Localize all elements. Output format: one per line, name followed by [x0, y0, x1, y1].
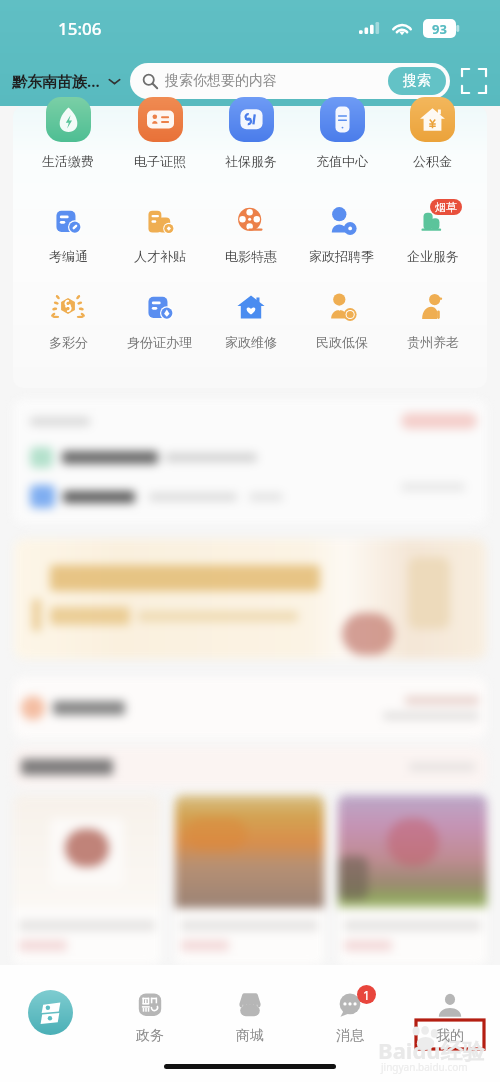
- button[interactable]: 烟草: [387, 190, 478, 276]
- button[interactable]: 我的: [400, 965, 500, 1055]
- staticText: 政务: [136, 1027, 164, 1045]
- staticText: 我的: [436, 1027, 464, 1045]
- staticText: 家政招聘季: [309, 248, 374, 264]
- button[interactable]: 多彩分: [22, 276, 114, 362]
- button[interactable]: 生活缴费: [22, 97, 114, 169]
- button[interactable]: 电子证照: [114, 97, 205, 169]
- staticText: 社保服务: [225, 153, 277, 169]
- staticText: 身份证办理: [127, 334, 192, 350]
- staticText: 商城: [236, 1027, 264, 1045]
- staticText: 烟草: [435, 200, 457, 214]
- button[interactable]: 公积金: [387, 97, 478, 169]
- staticText: 民政低保: [316, 334, 368, 350]
- staticText: 15:06: [58, 17, 102, 40]
- staticText: 1: [363, 987, 370, 1003]
- button[interactable]: 搜索: [388, 67, 446, 95]
- staticText: 企业服务: [407, 248, 459, 264]
- staticText: jingyan.baidu.com: [381, 1060, 468, 1074]
- button[interactable]: [13, 795, 161, 965]
- button[interactable]: 家政维修: [205, 276, 296, 362]
- button[interactable]: 1: [300, 965, 400, 1055]
- staticText: Baidu经验: [378, 1035, 485, 1065]
- staticText: 人才补贴: [134, 248, 186, 264]
- staticText: 生活缴费: [42, 153, 94, 169]
- staticText: 充值中心: [316, 153, 368, 169]
- staticText: 多彩分: [49, 334, 88, 350]
- button[interactable]: 黔东南苗族...: [10, 65, 123, 97]
- button[interactable]: 身份证办理: [114, 276, 205, 362]
- button[interactable]: Home: [0, 965, 100, 1055]
- button[interactable]: 搜索你想要的内容: [130, 63, 450, 99]
- button[interactable]: 政务: [100, 965, 200, 1055]
- button[interactable]: [338, 795, 487, 965]
- staticText: 搜索你想要的内容: [165, 72, 277, 90]
- button[interactable]: 贵州养老: [387, 276, 478, 362]
- staticText: 贵州养老: [407, 334, 459, 350]
- button[interactable]: 商城: [200, 965, 300, 1055]
- button[interactable]: 家政招聘季: [296, 190, 387, 276]
- staticText: 搜索: [403, 72, 431, 90]
- staticText: 电影特惠: [225, 248, 277, 264]
- staticText: 消息: [336, 1027, 364, 1045]
- staticText: 家政维修: [225, 334, 277, 350]
- staticText: 黔东南苗族...: [12, 71, 100, 91]
- button[interactable]: 电影特惠: [205, 190, 296, 276]
- button[interactable]: 人才补贴: [114, 190, 205, 276]
- staticText: 93: [432, 20, 447, 38]
- button[interactable]: [175, 795, 324, 965]
- button[interactable]: 考编通: [22, 190, 114, 276]
- button[interactable]: 民政低保: [296, 276, 387, 362]
- button[interactable]: Scan QR code: [458, 65, 490, 97]
- staticText: 电子证照: [134, 153, 186, 169]
- button[interactable]: 充值中心: [296, 97, 387, 169]
- staticText: 公积金: [413, 153, 452, 169]
- staticText: 考编通: [49, 248, 88, 264]
- button[interactable]: 社保服务: [205, 97, 296, 169]
